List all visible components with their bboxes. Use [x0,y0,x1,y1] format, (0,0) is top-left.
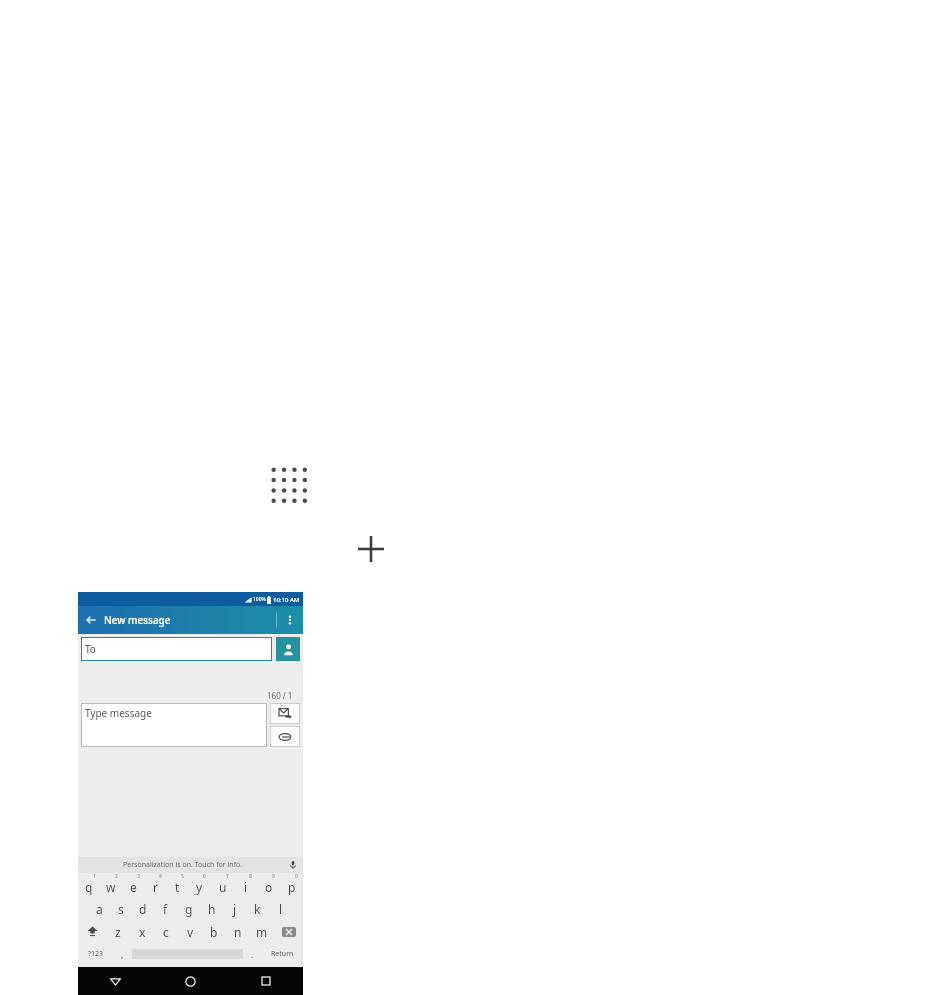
staticText: l [279,901,283,917]
button[interactable]: Shift [78,920,106,943]
staticText: Return [271,949,294,959]
button[interactable]: Add [352,530,390,568]
staticText: 100% [253,596,266,603]
staticText: k [254,901,261,917]
button[interactable]: d [132,897,154,920]
staticText: q [85,879,93,895]
staticText: x [139,924,146,940]
button[interactable]: s [110,897,132,920]
button[interactable]: 8 [234,873,257,897]
staticText: Personalization is on. Touch for info. [123,860,243,870]
button[interactable]: 4 [144,873,166,897]
staticText: Type message [85,706,152,720]
staticText: o [265,879,273,895]
button[interactable]: Return [262,943,303,965]
button[interactable]: Contacts [276,637,300,661]
button[interactable]: b [202,920,226,943]
button[interactable]: More options [277,607,303,633]
staticText: g [185,901,193,917]
staticText: 1 [93,873,96,880]
button[interactable]: j [223,897,246,920]
staticText: z [115,924,121,940]
button[interactable]: 6 [188,873,211,897]
staticText: p [288,879,296,895]
button[interactable]: Type message [85,706,267,747]
staticText: j [233,901,237,917]
staticText: i [244,879,248,895]
button[interactable]: 2 [100,873,122,897]
button[interactable]: c [154,920,178,943]
button[interactable]: z [106,920,130,943]
staticText: e [130,879,137,895]
staticText: t [175,879,180,895]
button[interactable]: 7 [211,873,234,897]
staticText: 0 [295,873,298,880]
staticText: n [234,924,242,940]
staticText: d [139,901,147,917]
staticText: c [163,924,169,940]
staticText: 10:10 AM [273,596,300,604]
staticText: 2 [115,873,118,880]
staticText: , [121,948,124,960]
staticText: 4 [159,873,162,880]
staticText: 7 [226,873,229,880]
button[interactable]: Send [270,703,300,724]
staticText: To [85,642,96,656]
button[interactable]: 3 [122,873,144,897]
button[interactable]: a [88,897,110,920]
button[interactable]: f [154,897,177,920]
staticText: 9 [272,873,275,880]
button[interactable]: k [246,897,269,920]
staticText: s [118,901,124,917]
button[interactable]: Attach [270,726,300,747]
button[interactable]: ?123 [78,943,113,965]
button[interactable]: g [177,897,200,920]
button[interactable]: , [113,943,132,965]
button[interactable]: Home [153,967,228,995]
staticText: 6 [203,873,206,880]
button[interactable]: . [243,943,262,965]
button[interactable]: 0 [280,873,303,897]
staticText: New message [104,613,171,627]
button[interactable]: m [250,920,274,943]
staticText: 3 [137,873,140,880]
button[interactable]: 9 [257,873,280,897]
staticText: b [210,924,218,940]
staticText: 5 [181,873,184,880]
button[interactable]: n [226,920,250,943]
button[interactable]: h [200,897,223,920]
button[interactable]: x [130,920,154,943]
staticText: 8 [249,873,252,880]
button[interactable]: To [85,637,272,661]
button[interactable]: l [269,897,292,920]
staticText: v [187,924,194,940]
staticText: w [106,879,116,895]
button[interactable]: Back [78,967,153,995]
staticText: . [251,948,254,960]
button[interactable]: Back [78,607,104,633]
staticText: m [256,924,268,940]
staticText: u [219,879,227,895]
staticText: 160 / 1 [267,690,293,701]
staticText: r [153,879,158,895]
staticText: a [96,901,103,917]
button[interactable]: v [178,920,202,943]
button[interactable]: Backspace [274,920,303,943]
staticText: f [163,901,168,917]
button[interactable]: 1 [78,873,100,897]
staticText: y [196,879,203,895]
button[interactable]: Apps [265,461,317,513]
staticText: ?123 [88,949,104,959]
button[interactable]: Recents [228,967,303,995]
button[interactable]: 5 [166,873,188,897]
staticText: h [208,901,216,917]
